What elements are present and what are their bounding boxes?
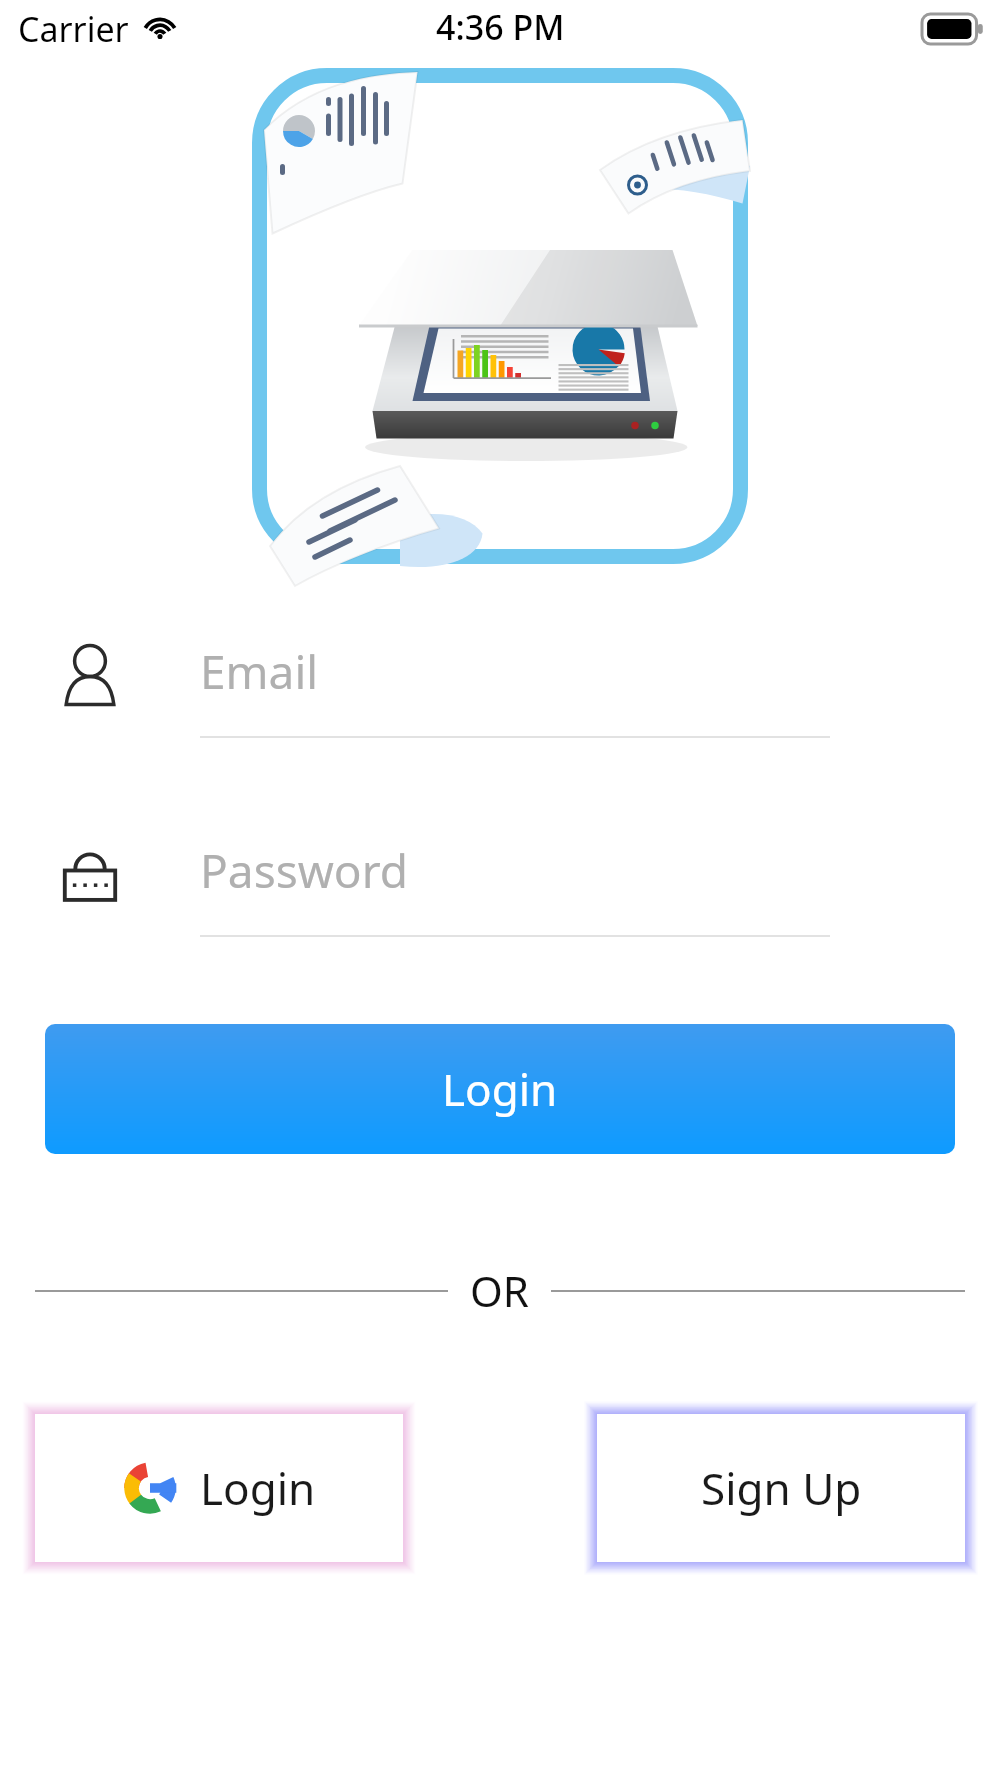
staticText: OR	[470, 1262, 529, 1319]
staticText: Login	[200, 1458, 316, 1518]
staticText: 4:36 PM	[436, 4, 565, 50]
staticText: Password	[200, 839, 409, 902]
staticText: Sign Up	[701, 1458, 862, 1518]
staticText: Email	[200, 640, 319, 703]
button[interactable]: Email	[0, 626, 1000, 738]
button[interactable]: Login	[35, 1414, 403, 1562]
staticText: Login	[442, 1059, 558, 1119]
staticText: Carrier	[18, 6, 129, 52]
button[interactable]: Login	[45, 1024, 955, 1154]
button[interactable]: Password	[0, 825, 1000, 937]
button[interactable]: Sign Up	[597, 1414, 965, 1562]
